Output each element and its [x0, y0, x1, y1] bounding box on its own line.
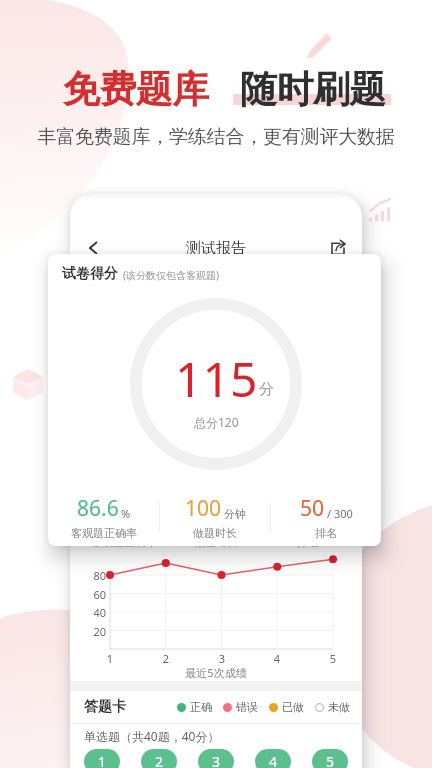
staticText: 最近5次成绩: [70, 665, 362, 680]
staticText: 3: [214, 651, 230, 666]
button[interactable]: Share: [328, 238, 348, 258]
staticText: 2: [158, 651, 174, 666]
button[interactable]: 5: [312, 749, 348, 768]
staticText: 80: [76, 568, 106, 583]
staticText: 115: [175, 346, 258, 411]
staticText: 测试报告: [104, 239, 328, 258]
staticText: 4: [269, 752, 278, 768]
button[interactable]: 3: [198, 749, 234, 768]
staticText: 随时刷题: [240, 66, 386, 113]
staticText: 1: [98, 752, 107, 768]
staticText: 20: [76, 624, 106, 639]
staticText: (该分数仅包含客观题): [123, 268, 219, 282]
staticText: 86.6: [77, 494, 119, 523]
staticText: 4: [269, 651, 285, 666]
staticText: 100: [185, 494, 222, 523]
staticText: 客观题正确率: [71, 526, 137, 540]
staticText: 5: [325, 651, 341, 666]
staticText: 排名: [315, 526, 337, 540]
staticText: 做题时长: [193, 526, 237, 540]
button[interactable]: Back: [84, 238, 104, 258]
staticText: 3: [212, 752, 221, 768]
staticText: 60: [76, 587, 106, 602]
staticText: 做题时长: [170, 535, 262, 549]
staticText: 排名: [262, 535, 354, 549]
staticText: 正确: [190, 700, 212, 714]
staticText: 分钟: [224, 507, 246, 521]
button[interactable]: 1: [84, 749, 120, 768]
button[interactable]: 2: [141, 749, 177, 768]
staticText: 1: [102, 651, 118, 666]
staticText: 2: [155, 752, 164, 768]
staticText: 分: [259, 380, 274, 399]
staticText: 5: [326, 752, 335, 768]
staticText: / 300: [327, 506, 353, 521]
staticText: 50: [300, 494, 325, 523]
staticText: %: [121, 506, 131, 521]
staticText: 40: [76, 605, 106, 620]
staticText: 单选题（共40题，40分）: [84, 728, 220, 744]
staticText: 总分120: [194, 414, 239, 430]
staticText: 免费题库: [63, 66, 209, 113]
staticText: 客观题正确率: [78, 535, 170, 549]
button[interactable]: 4: [255, 749, 291, 768]
staticText: 错误: [236, 700, 258, 714]
staticText: 试卷得分: [62, 265, 118, 283]
staticText: 丰富免费题库，学练结合，更有测评大数据: [0, 125, 432, 149]
staticText: 答题卡: [84, 698, 126, 716]
staticText: 未做: [328, 700, 350, 714]
staticText: 已做: [282, 700, 304, 714]
